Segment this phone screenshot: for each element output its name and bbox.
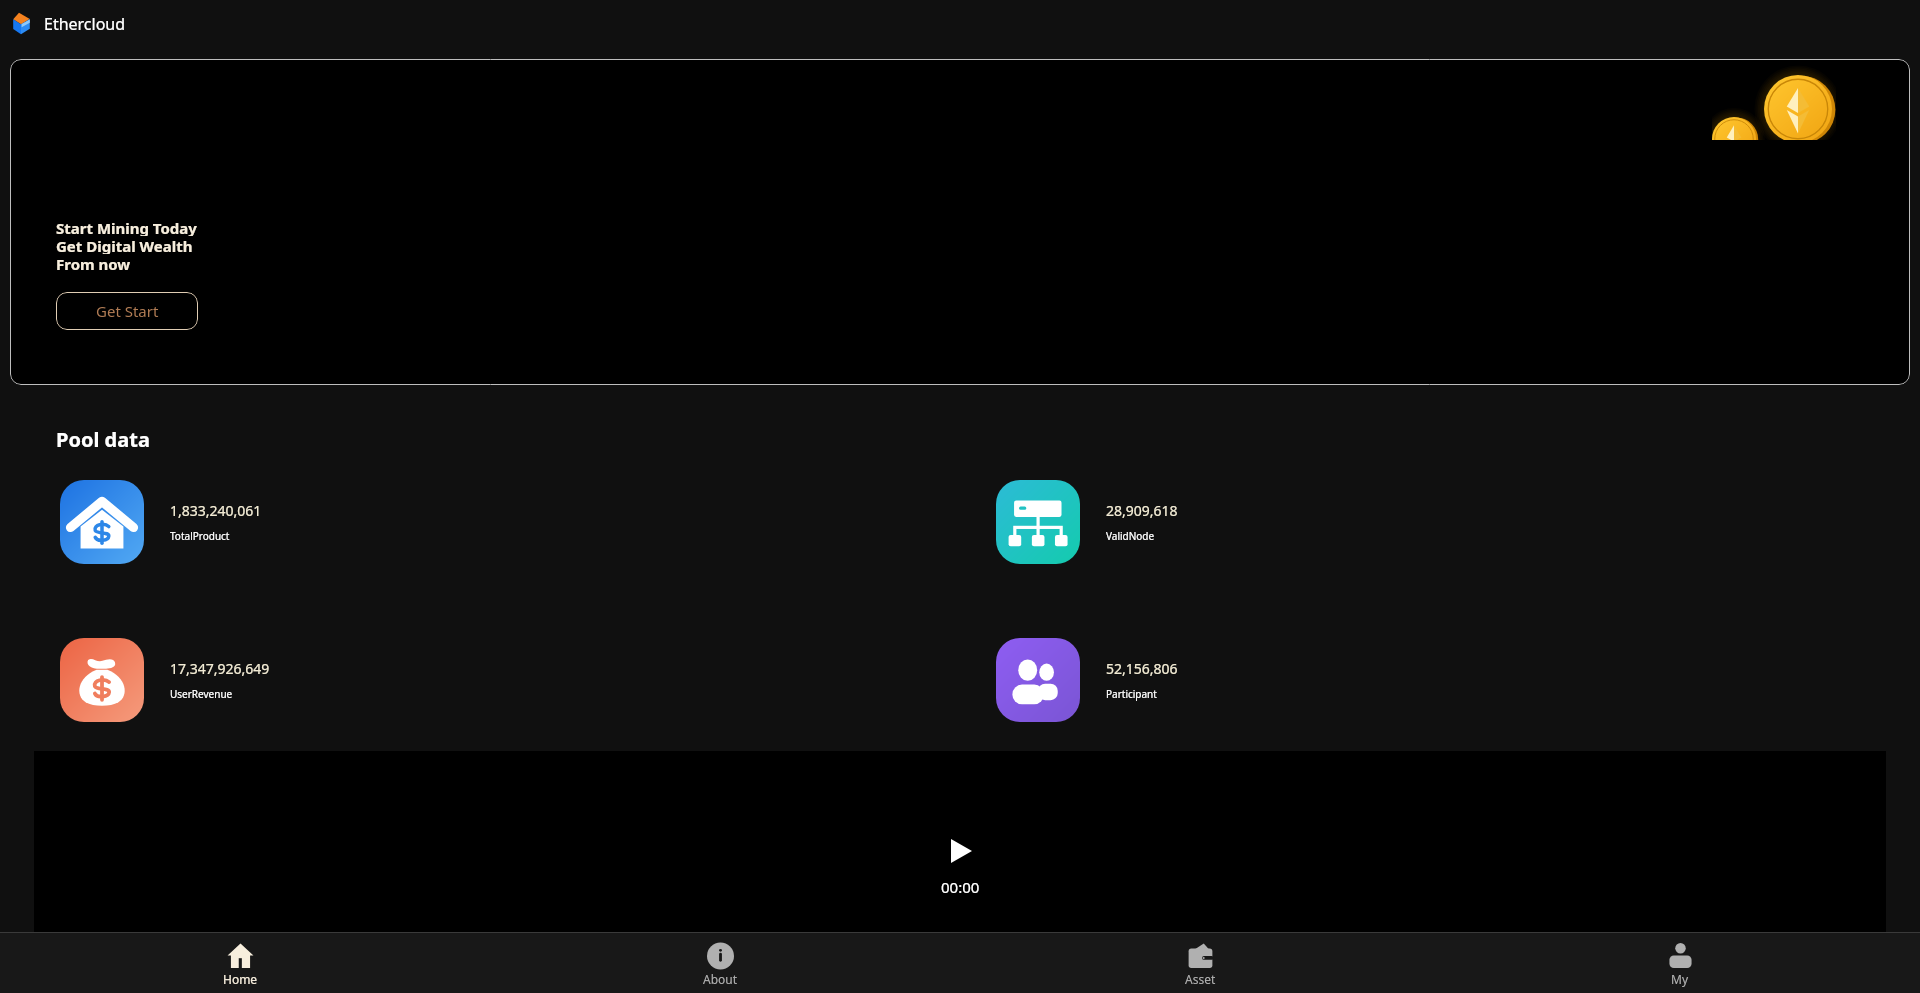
staticText: 28,909,618	[1106, 501, 1178, 520]
button[interactable]: Home	[0, 933, 480, 993]
staticText: 52,156,806	[1106, 659, 1178, 678]
staticText: About	[703, 971, 738, 987]
staticText: 00:00	[941, 877, 980, 897]
staticText: 17,347,926,649	[170, 659, 270, 678]
button[interactable]: My	[1440, 933, 1920, 993]
staticText: ValidNode	[1106, 529, 1155, 543]
staticText: From now	[56, 254, 131, 272]
staticText: Asset	[1185, 971, 1216, 987]
button[interactable]: 52,156,806	[996, 638, 1920, 722]
staticText: Get Start	[96, 301, 159, 321]
staticText: Home	[223, 971, 258, 987]
button[interactable]: Get Start	[56, 292, 198, 330]
button[interactable]: Play	[943, 833, 979, 869]
staticText: Ethercloud	[44, 13, 126, 35]
staticText: Pool data	[56, 426, 150, 453]
staticText: UserRevenue	[170, 687, 233, 701]
staticText: TotalProduct	[170, 529, 230, 543]
button[interactable]: 28,909,618	[996, 480, 1920, 564]
button[interactable]: 17,347,926,649	[60, 638, 996, 722]
staticText: My	[1671, 971, 1689, 987]
staticText: Get Digital Wealth	[56, 236, 193, 254]
button[interactable]: Asset	[960, 933, 1440, 993]
button[interactable]: About	[480, 933, 960, 993]
staticText: Start Mining Today	[56, 218, 197, 236]
button[interactable]: 1,833,240,061	[60, 480, 996, 564]
staticText: Participant	[1106, 687, 1157, 701]
staticText: 1,833,240,061	[170, 501, 262, 520]
